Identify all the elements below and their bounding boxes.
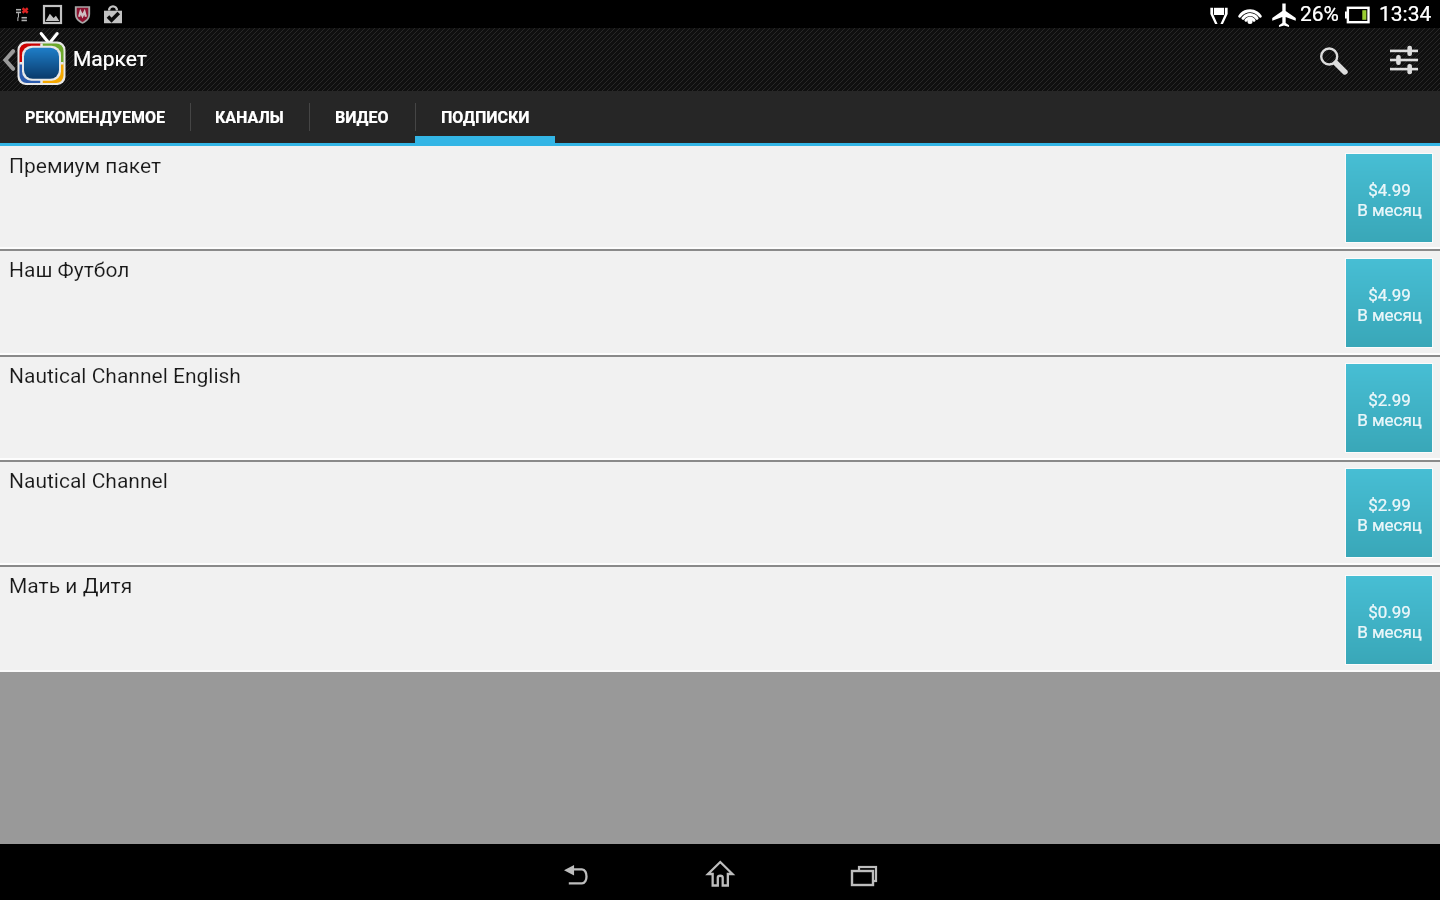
staticText: Nautical Channel English <box>9 364 241 389</box>
staticText: КАНАЛЫ <box>215 108 284 127</box>
staticText: 26% <box>1300 2 1339 27</box>
button[interactable]: Settings <box>1376 28 1432 91</box>
button[interactable]: Nautical Channel <box>0 461 1440 565</box>
staticText: 13:34 <box>1379 2 1432 27</box>
button[interactable]: Back <box>504 844 648 900</box>
button[interactable]: $2.99 <box>1346 469 1432 557</box>
button[interactable]: ПОДПИСКИ <box>415 91 555 143</box>
button[interactable]: Маркет <box>0 28 160 91</box>
staticText: $2.99 <box>1368 495 1411 515</box>
button[interactable]: Nautical Channel English <box>0 356 1440 460</box>
staticText: В месяц <box>1357 410 1422 430</box>
staticText: $2.99 <box>1368 390 1411 410</box>
button[interactable]: $2.99 <box>1346 364 1432 452</box>
button[interactable]: Home <box>648 844 792 900</box>
button[interactable]: Recent apps <box>792 844 936 900</box>
staticText: Премиум пакет <box>9 154 162 179</box>
button[interactable]: Мать и Дитя <box>0 566 1440 673</box>
staticText: Наш Футбол <box>9 258 130 283</box>
button[interactable]: $4.99 <box>1346 259 1432 347</box>
button[interactable]: $0.99 <box>1346 576 1432 664</box>
button[interactable]: Наш Футбол <box>0 250 1440 355</box>
button[interactable]: $4.99 <box>1346 154 1432 242</box>
staticText: РЕКОМЕНДУЕМОЕ <box>25 108 165 127</box>
staticText: $4.99 <box>1368 180 1411 200</box>
button[interactable]: КАНАЛЫ <box>190 91 309 143</box>
staticText: В месяц <box>1357 622 1422 642</box>
staticText: Nautical Channel <box>9 469 168 494</box>
staticText: $4.99 <box>1368 285 1411 305</box>
staticText: $0.99 <box>1368 602 1411 622</box>
staticText: В месяц <box>1357 200 1422 220</box>
staticText: ПОДПИСКИ <box>441 108 530 127</box>
button[interactable]: ВИДЕО <box>309 91 415 143</box>
staticText: Маркет <box>73 47 147 72</box>
staticText: ВИДЕО <box>335 108 389 127</box>
button[interactable]: Премиум пакет <box>0 146 1440 249</box>
staticText: В месяц <box>1357 515 1422 535</box>
button[interactable]: РЕКОМЕНДУЕМОЕ <box>0 91 190 143</box>
staticText: Мать и Дитя <box>9 574 133 599</box>
button[interactable]: Search <box>1300 28 1356 91</box>
staticText: В месяц <box>1357 305 1422 325</box>
